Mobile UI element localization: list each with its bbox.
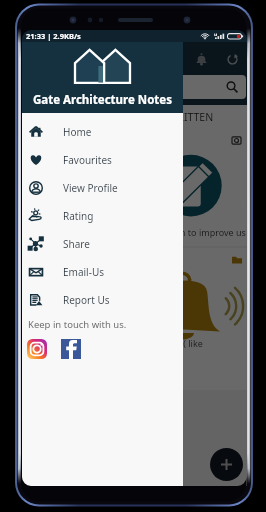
button[interactable]: NOTIFICATIONS <box>22 248 247 390</box>
staticText: we required your valuable entry from to … <box>28 226 246 238</box>
button[interactable]: View Profile <box>22 174 183 202</box>
staticText: Keep in touch with us. <box>28 318 127 331</box>
button[interactable]: Home <box>22 118 183 146</box>
button[interactable] <box>23 75 246 99</box>
button[interactable]: HOW TO CLEAR-GATE HANDWRITTEN <box>22 105 247 246</box>
button[interactable]: Rating <box>22 202 183 230</box>
button[interactable]: Notifications <box>189 47 213 71</box>
staticText: Home <box>63 125 92 139</box>
staticText: HOW TO CLEAR-GATE HANDWRITTEN <box>30 110 214 124</box>
staticText: 21:33 | 2.9KB/s <box>26 31 81 41</box>
staticText: new notes, mrcuspaucept etc.) <box>28 352 157 364</box>
staticText: here you get important notifications ( l… <box>28 337 203 349</box>
staticText: Email-Us <box>63 265 104 279</box>
staticText: Gate Architecture Notes <box>33 92 172 108</box>
staticText: Report Us <box>63 293 110 307</box>
staticText: Share <box>63 237 90 251</box>
button[interactable]: Facebook <box>61 339 81 359</box>
button[interactable]: Share <box>22 230 183 258</box>
button[interactable]: Add <box>210 448 243 481</box>
staticText: View Profile <box>63 181 118 195</box>
staticText: Favourites <box>63 153 112 167</box>
button[interactable]: Instagram <box>27 339 47 359</box>
button[interactable]: Report Us <box>22 286 183 314</box>
button[interactable]: Email-Us <box>22 258 183 286</box>
staticText: Rating <box>63 209 94 223</box>
button[interactable]: Refresh <box>220 47 244 71</box>
staticText: FILL THE FORM <box>30 134 94 146</box>
button[interactable]: Favourites <box>22 146 183 174</box>
